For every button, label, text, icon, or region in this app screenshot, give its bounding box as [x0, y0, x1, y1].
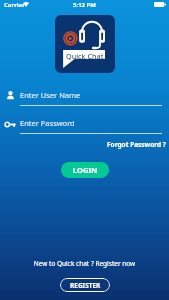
- staticText: REGISTER: [70, 281, 101, 290]
- staticText: Enter User Name: [20, 90, 81, 100]
- staticText: Carrier: [4, 1, 25, 9]
- button[interactable]: Forgot Password ?: [107, 140, 166, 149]
- staticText: LOGIN: [73, 165, 98, 175]
- staticText: 5:12 PM: [0, 1, 169, 9]
- button[interactable]: REGISTER: [60, 278, 110, 292]
- other: Wi-Fi: [23, 2, 29, 7]
- button[interactable]: New to Quick chat ? Register now: [0, 259, 169, 268]
- staticText: Quick Chat: [66, 51, 104, 61]
- other: Battery: [154, 2, 166, 7]
- button[interactable]: LOGIN: [61, 162, 109, 178]
- staticText: Enter Password: [20, 118, 75, 128]
